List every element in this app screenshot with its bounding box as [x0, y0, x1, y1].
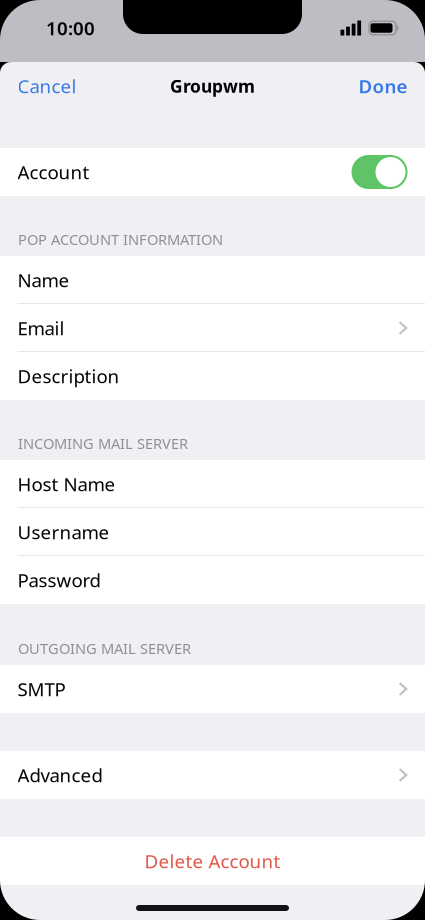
- staticText: Password: [17, 568, 100, 592]
- button[interactable]: Description: [0, 352, 425, 400]
- staticText: SMTP: [17, 677, 65, 701]
- staticText: Done: [358, 74, 407, 98]
- staticText: Account: [17, 160, 89, 184]
- staticText: Name: [17, 268, 69, 292]
- button[interactable]: Account: [0, 148, 425, 196]
- button[interactable]: Username: [0, 508, 425, 556]
- button[interactable]: Advanced: [0, 751, 425, 799]
- staticText: Email: [17, 316, 64, 340]
- button[interactable]: Name: [0, 256, 425, 304]
- staticText: 10:00: [46, 16, 95, 40]
- button[interactable]: Done: [344, 62, 425, 110]
- staticText: INCOMING MAIL SERVER: [18, 433, 188, 453]
- button[interactable]: Host Name: [0, 460, 425, 508]
- staticText: Delete Account: [144, 849, 280, 873]
- staticText: Username: [17, 520, 109, 544]
- button[interactable]: Cancel: [0, 62, 90, 110]
- staticText: Advanced: [17, 763, 102, 787]
- button[interactable]: SMTP: [0, 665, 425, 713]
- staticText: OUTGOING MAIL SERVER: [18, 638, 191, 658]
- button[interactable]: Delete Account: [0, 837, 425, 885]
- staticText: Cancel: [17, 74, 76, 98]
- staticText: Host Name: [17, 472, 115, 496]
- staticText: Description: [17, 364, 119, 388]
- staticText: POP ACCOUNT INFORMATION: [18, 229, 223, 249]
- button[interactable]: Password: [0, 556, 425, 604]
- button[interactable]: Email: [0, 304, 425, 352]
- staticText: Groupwm: [170, 74, 255, 97]
